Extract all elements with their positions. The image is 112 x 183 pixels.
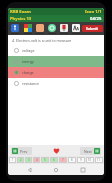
button[interactable]: Favourite — [52, 146, 61, 155]
staticText: 10 — [88, 158, 92, 162]
button[interactable]: 1 — [9, 157, 16, 163]
button[interactable]: Recent apps — [78, 165, 88, 175]
staticText: resistance — [22, 81, 40, 86]
button[interactable]: Colors — [22, 23, 33, 34]
button[interactable]: 10 — [86, 157, 94, 163]
staticText: 9 — [80, 158, 82, 162]
button[interactable]: Target — [46, 23, 57, 34]
staticText: 11 — [97, 158, 101, 162]
staticText: 4 — [36, 158, 38, 162]
staticText: 04/25 — [90, 16, 102, 22]
button[interactable]: 2 — [17, 157, 24, 163]
staticText: RRB Exam — [10, 9, 31, 15]
button[interactable]: Card — [34, 23, 45, 34]
staticText: 3 — [28, 158, 30, 162]
staticText: Prev — [20, 149, 28, 154]
staticText: 2 — [20, 158, 22, 162]
staticText: voltage — [22, 48, 35, 53]
button[interactable]: 6 — [50, 157, 58, 163]
staticText: energy — [22, 59, 34, 64]
button[interactable]: Submit — [82, 25, 103, 32]
button[interactable]: 3 — [25, 157, 32, 163]
button[interactable]: 8 — [68, 157, 76, 163]
staticText: charge — [22, 70, 34, 75]
button[interactable]: 7 — [59, 157, 67, 163]
staticText: Physics 13 — [10, 16, 32, 22]
staticText: 4. Electron-volt is a unit to measure — [12, 38, 72, 43]
button[interactable]: 4 — [33, 157, 40, 163]
button[interactable]: 11 — [95, 157, 103, 163]
button[interactable]: charge — [8, 67, 104, 78]
staticText: 5 — [44, 158, 46, 162]
button[interactable]: 9 — [77, 157, 85, 163]
button[interactable]: Flag — [58, 23, 69, 34]
staticText: 6 — [53, 158, 55, 162]
staticText: 8 — [71, 158, 73, 162]
button[interactable]: Next — [80, 147, 101, 155]
staticText: Icon 1/1 — [85, 9, 102, 15]
button[interactable]: voltage — [8, 45, 104, 56]
button[interactable]: Font size — [70, 23, 81, 34]
button[interactable]: Home — [51, 165, 61, 175]
button[interactable]: energy — [8, 56, 104, 67]
staticText: 7 — [62, 158, 64, 162]
button[interactable]: Back — [25, 165, 35, 175]
button[interactable]: Info — [9, 23, 21, 34]
staticText: 1 — [12, 158, 14, 162]
staticText: Submit — [86, 26, 99, 31]
staticText: Next — [84, 149, 92, 154]
button[interactable]: 5 — [41, 157, 49, 163]
button[interactable]: resistance — [8, 78, 104, 89]
button[interactable]: Prev — [11, 147, 32, 155]
